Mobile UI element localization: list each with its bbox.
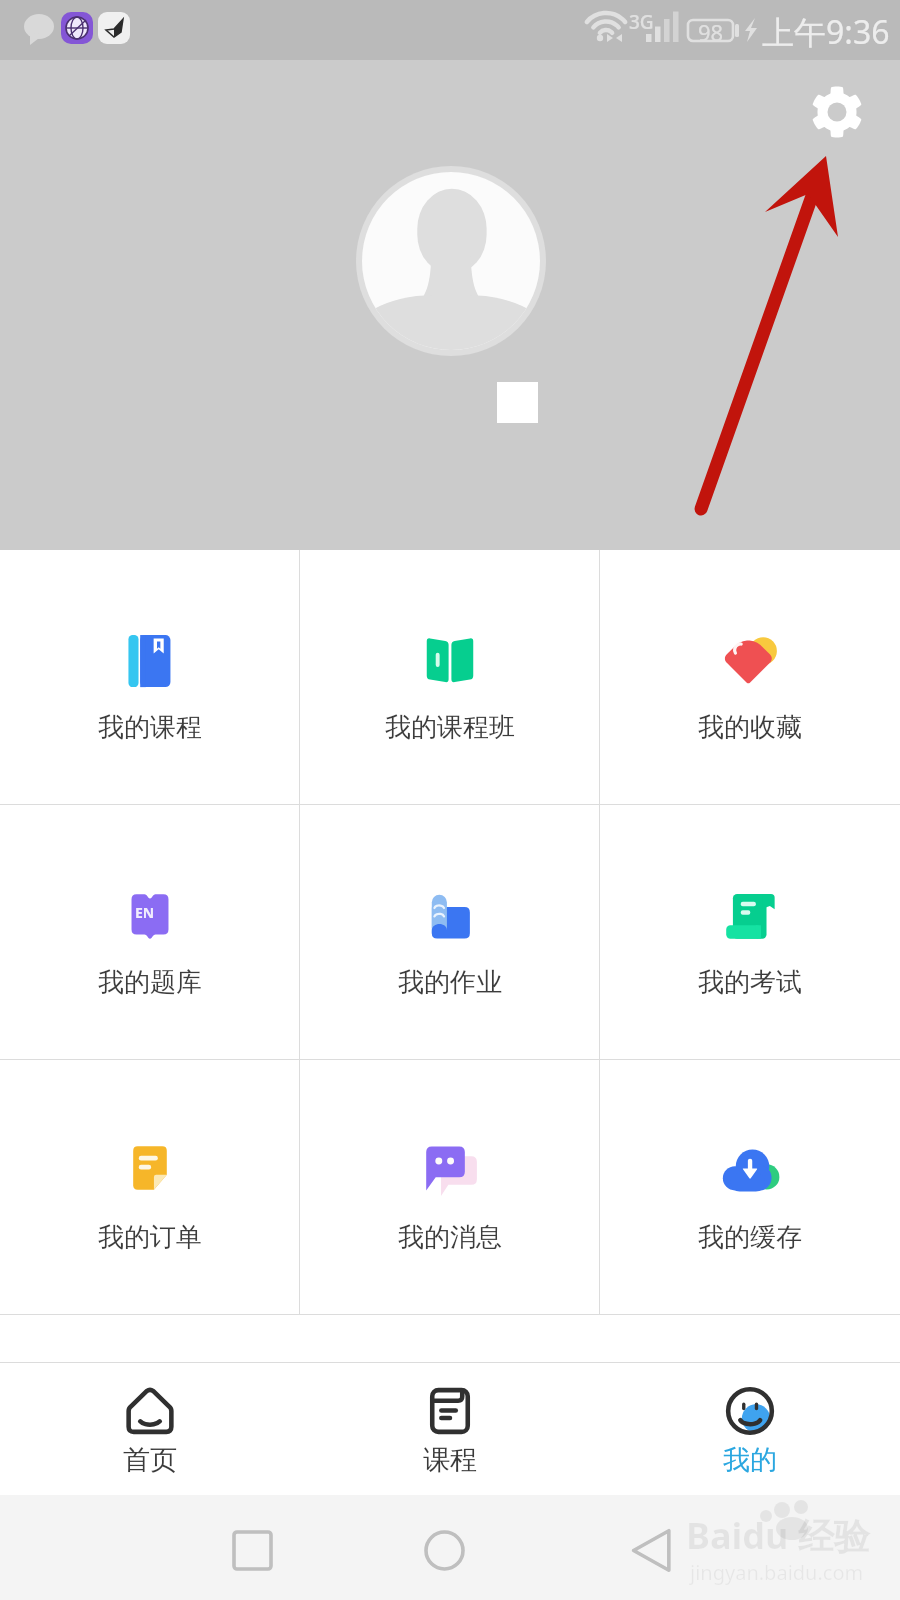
staticText: EN (135, 903, 155, 922)
staticText: 98 (698, 17, 724, 47)
button[interactable]: Profile photo (356, 166, 546, 356)
button[interactable]: 课程 (300, 1363, 600, 1495)
button[interactable]: 我的消息 (300, 1060, 600, 1314)
staticText: 我的消息 (398, 1221, 502, 1254)
button[interactable]: 首页 (0, 1363, 300, 1495)
staticText: 我的考试 (698, 966, 802, 999)
button[interactable]: Back (610, 1508, 694, 1592)
button[interactable]: 我的收藏 (600, 550, 900, 804)
staticText: 我的课程班 (385, 711, 515, 744)
button[interactable]: Home (402, 1508, 486, 1592)
staticText: 我的作业 (398, 966, 502, 999)
staticText: 我的课程 (98, 711, 202, 744)
staticText: 我的题库 (98, 966, 202, 999)
staticText: 3G (629, 9, 654, 35)
button[interactable]: 我的课程 (0, 550, 300, 804)
staticText: 我的 (723, 1443, 777, 1477)
button[interactable]: EN (0, 805, 300, 1059)
button[interactable]: 我的订单 (0, 1060, 300, 1314)
button[interactable]: Recents (210, 1508, 294, 1592)
staticText: jingyan.baidu.com (690, 1559, 864, 1586)
staticText: 首页 (123, 1443, 177, 1477)
staticText: Baidu 经验 (686, 1511, 870, 1560)
staticText: 课程 (423, 1443, 477, 1477)
button[interactable]: Settings (807, 82, 867, 142)
button[interactable]: 我的作业 (300, 805, 600, 1059)
button[interactable]: 我的 (600, 1363, 900, 1495)
staticText: 我的收藏 (698, 711, 802, 744)
button[interactable]: 我的课程班 (300, 550, 600, 804)
staticText: 我的缓存 (698, 1221, 802, 1254)
staticText: 我的订单 (98, 1221, 202, 1254)
button[interactable]: 我的考试 (600, 805, 900, 1059)
button[interactable]: 我的缓存 (600, 1060, 900, 1314)
staticText: 上午9:36 (762, 10, 890, 54)
